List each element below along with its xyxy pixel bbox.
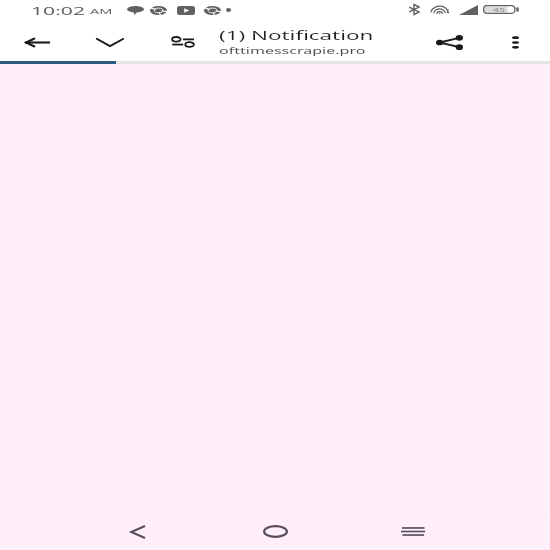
button[interactable]: Page info xyxy=(162,28,204,56)
button[interactable]: Collapse xyxy=(86,30,134,54)
button[interactable]: Share xyxy=(426,27,472,57)
button[interactable]: Back xyxy=(13,30,61,54)
button[interactable]: Home xyxy=(206,513,344,550)
button[interactable]: (1) Notification xyxy=(219,26,309,56)
staticText: 10:02 xyxy=(31,3,87,18)
button[interactable]: Recent apps xyxy=(344,513,482,550)
staticText: AM xyxy=(90,7,114,16)
button[interactable]: More options xyxy=(494,28,536,56)
staticText: ofttimesscrapie.pro xyxy=(219,44,367,56)
staticText: 45 xyxy=(493,6,506,13)
button[interactable]: Back xyxy=(69,513,207,550)
staticText: (1) Notification xyxy=(219,26,374,44)
